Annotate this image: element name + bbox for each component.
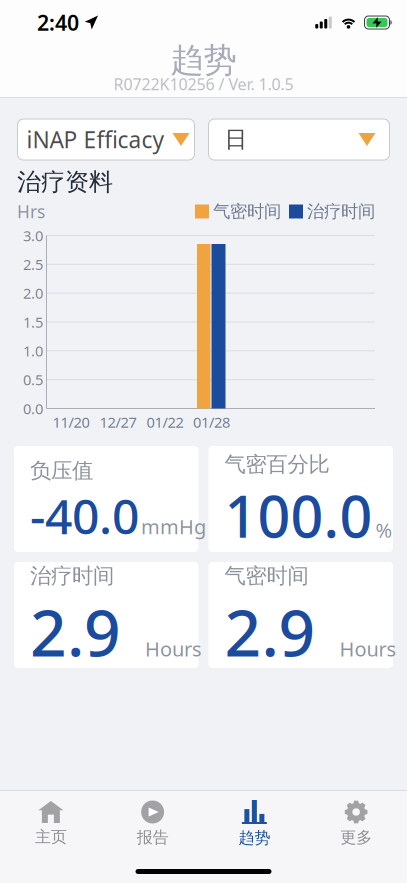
button[interactable]: 更多	[305, 800, 407, 847]
button[interactable]: 主页	[0, 801, 102, 847]
staticText: 01/28	[193, 412, 230, 432]
staticText: 趋势	[238, 828, 270, 848]
staticText: 2:40	[37, 8, 79, 37]
staticText: 1.0	[23, 341, 43, 361]
staticText: 气密时间	[224, 563, 308, 589]
staticText: 2.9	[224, 589, 315, 674]
staticText: 负压值	[30, 457, 93, 484]
staticText: 趋势	[170, 40, 236, 81]
staticText: Hrs	[17, 200, 45, 223]
button[interactable]: 治疗时间	[14, 562, 198, 668]
staticText: 01/22	[146, 412, 183, 432]
button[interactable]: 气密时间	[208, 562, 393, 668]
staticText: 2.0	[23, 283, 43, 303]
button[interactable]: iNAP Efficacy	[17, 119, 194, 160]
button[interactable]: 报告	[102, 800, 204, 847]
staticText: 治疗资料	[17, 167, 113, 197]
staticText: 2.9	[30, 589, 121, 674]
button[interactable]: 负压值	[14, 446, 198, 552]
staticText: Hours	[339, 635, 396, 662]
staticText: 气密时间	[213, 201, 281, 222]
staticText: 治疗时间	[30, 563, 114, 589]
staticText: 日	[224, 126, 247, 153]
staticText: %	[375, 517, 392, 543]
button[interactable]: 趋势	[203, 800, 305, 848]
button[interactable]: 日	[208, 119, 389, 160]
staticText: 2.5	[23, 255, 43, 274]
staticText: 11/20	[52, 412, 89, 432]
staticText: 0.0	[23, 399, 43, 418]
staticText: 报告	[137, 827, 169, 847]
button[interactable]: 气密百分比	[208, 446, 393, 552]
staticText: R0722K10256 / Ver. 1.0.5	[113, 73, 293, 95]
staticText: 更多	[340, 827, 372, 847]
staticText: 100.0	[224, 477, 372, 554]
staticText: 主页	[35, 827, 67, 847]
staticText: iNAP Efficacy	[26, 124, 164, 154]
staticText: Hours	[145, 635, 202, 662]
staticText: 3.0	[23, 226, 43, 245]
staticText: mmHg	[141, 513, 206, 540]
staticText: -40.0	[30, 484, 139, 547]
staticText: 0.5	[23, 370, 43, 389]
staticText: 气密百分比	[224, 451, 329, 477]
staticText: 1.5	[23, 312, 43, 332]
staticText: 12/27	[99, 412, 136, 432]
staticText: 治疗时间	[307, 201, 375, 222]
